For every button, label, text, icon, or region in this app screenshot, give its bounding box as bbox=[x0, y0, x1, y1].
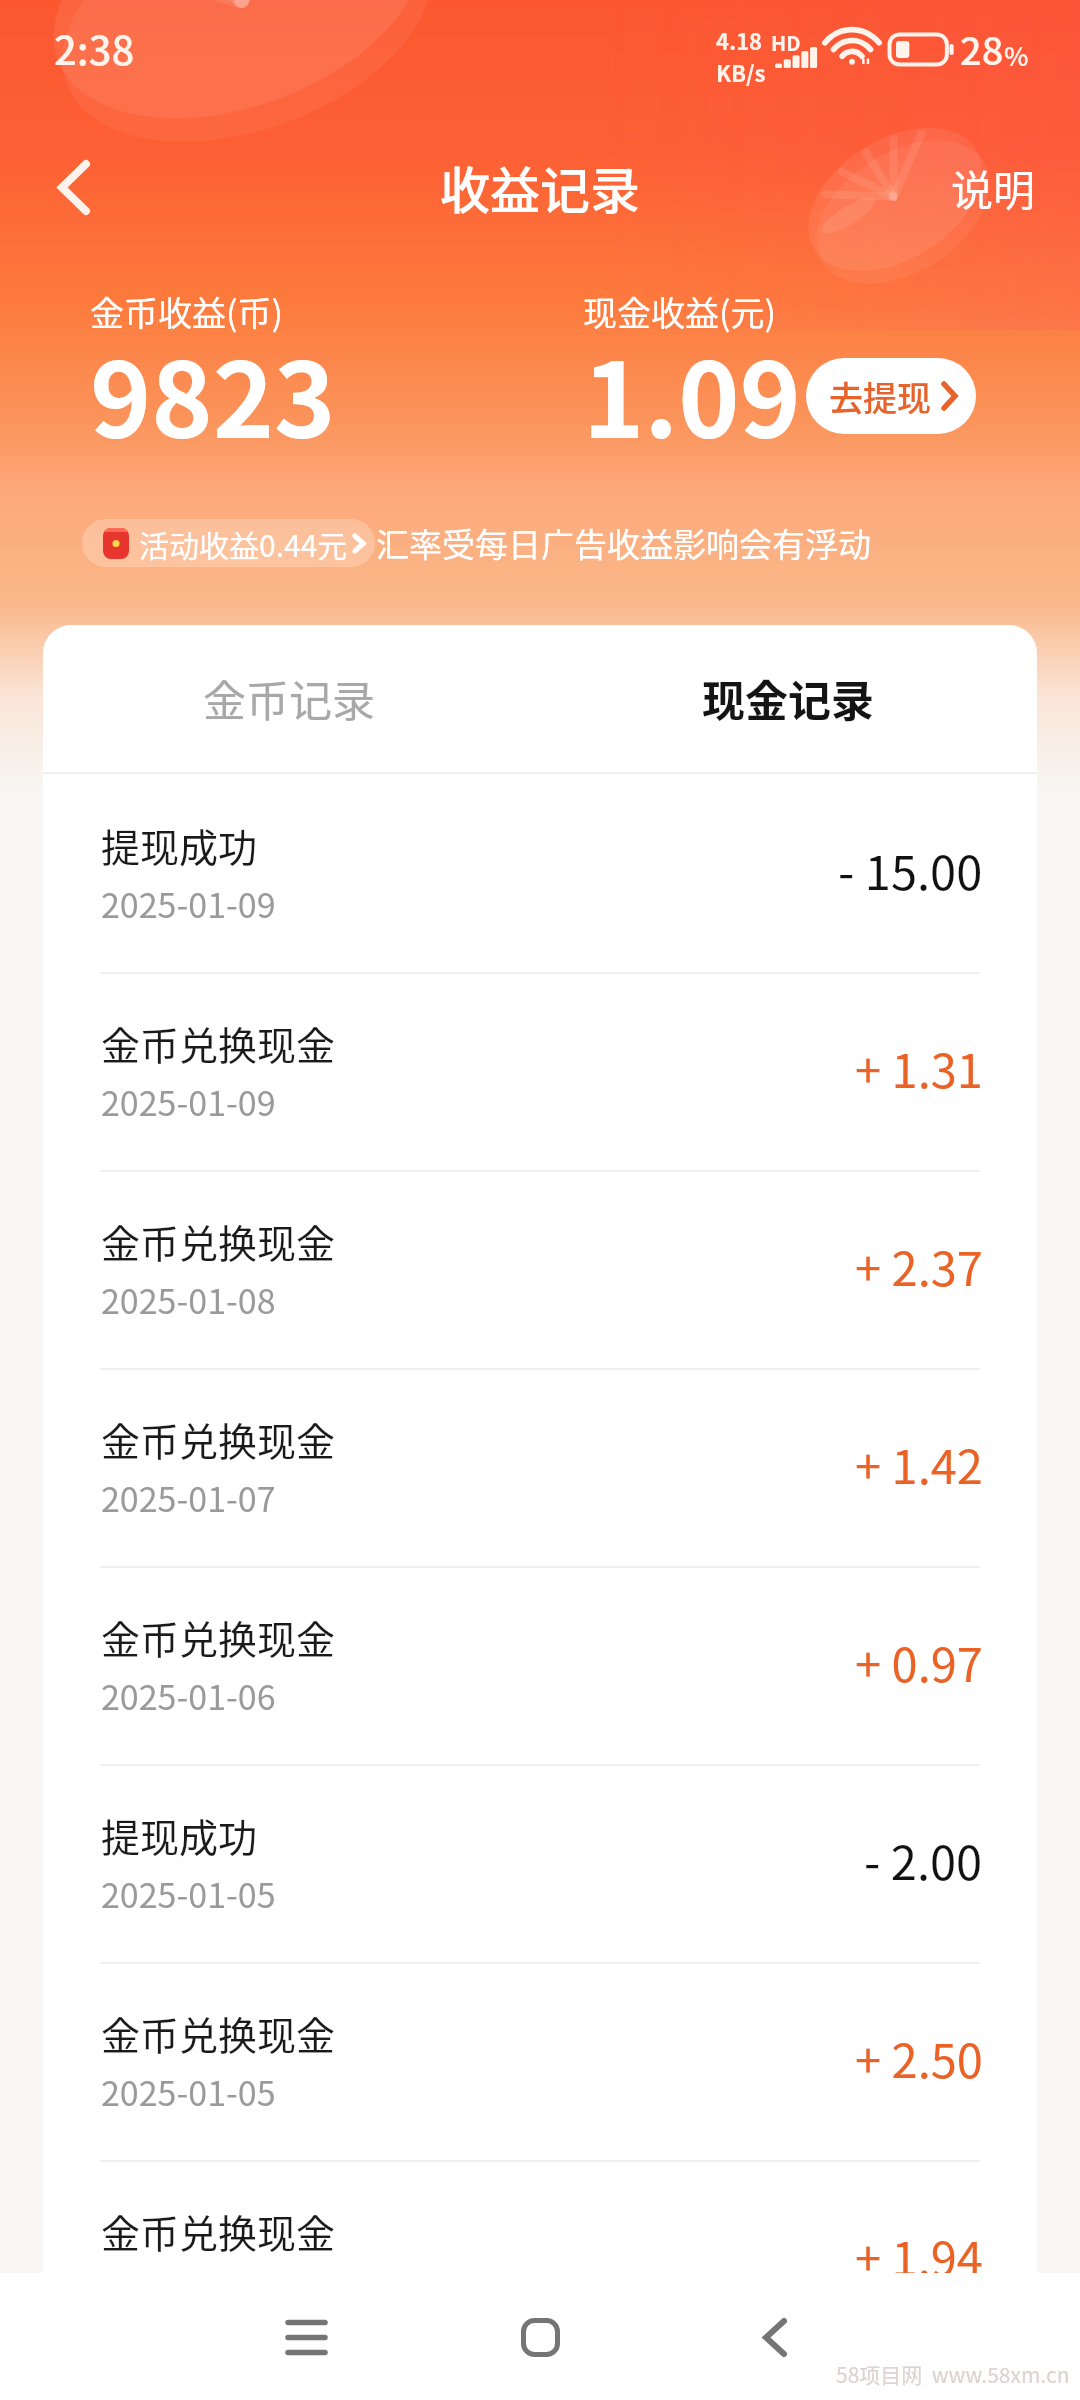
staticText: + 1.31 bbox=[855, 1033, 983, 1101]
button[interactable]: 返回 bbox=[0, 100, 148, 274]
button[interactable]: 金币兑换现金 bbox=[43, 1170, 1037, 1368]
staticText: KB/s bbox=[716, 56, 766, 88]
staticText: 2:38 bbox=[54, 19, 135, 77]
button[interactable]: 返回 bbox=[715, 2277, 835, 2397]
button[interactable]: 说明 bbox=[951, 100, 1036, 274]
staticText: 金币兑换现金 bbox=[101, 1213, 336, 1269]
staticText: - 15.00 bbox=[838, 835, 983, 903]
button[interactable]: 主屏幕 bbox=[480, 2277, 600, 2397]
button[interactable]: 最近任务 bbox=[246, 2277, 366, 2397]
staticText: 金币兑换现金 bbox=[101, 1609, 336, 1665]
staticText: 提现成功 bbox=[101, 1807, 258, 1863]
staticText: 金币记录 bbox=[203, 667, 375, 729]
button[interactable]: 金币兑换现金 bbox=[43, 972, 1037, 1170]
staticText: 2025-01-09 bbox=[101, 879, 276, 928]
staticText: 收益记录 bbox=[440, 151, 640, 223]
button[interactable]: 活动收益0.44元 bbox=[82, 519, 375, 567]
button[interactable]: 提现成功 bbox=[43, 1764, 1037, 1962]
staticText: 汇率受每日广告收益影响会有浮动 bbox=[376, 519, 871, 567]
staticText: 现金收益(元) bbox=[583, 287, 776, 336]
button[interactable]: 去提现 bbox=[806, 358, 976, 434]
staticText: HD bbox=[771, 28, 801, 57]
button[interactable]: 提现成功 bbox=[43, 774, 1037, 972]
button[interactable]: 金币兑换现金 bbox=[43, 1962, 1037, 2160]
button[interactable]: 金币兑换现金 bbox=[43, 2160, 1037, 2358]
staticText: 58项目网 www.58xm.cn bbox=[836, 2359, 1070, 2389]
staticText: 2025-01-07 bbox=[101, 1473, 276, 1522]
staticText: 金币兑换现金 bbox=[101, 2005, 336, 2061]
staticText: % bbox=[1004, 36, 1029, 74]
staticText: 9823 bbox=[90, 317, 336, 468]
button[interactable]: 金币兑换现金 bbox=[43, 1566, 1037, 1764]
staticText: + 2.37 bbox=[855, 1231, 983, 1299]
staticText: 4.18 bbox=[716, 24, 763, 56]
staticText: 活动收益0.44元 bbox=[139, 522, 348, 565]
button[interactable]: 金币兑换现金 bbox=[43, 1368, 1037, 1566]
staticText: 金币收益(币) bbox=[90, 287, 283, 336]
button[interactable]: 现金记录 bbox=[540, 625, 1037, 772]
staticText: 说明 bbox=[951, 157, 1036, 218]
staticText: 去提现 bbox=[829, 372, 931, 421]
staticText: + 0.97 bbox=[855, 1627, 983, 1695]
staticText: 现金记录 bbox=[702, 667, 874, 729]
staticText: 1.09 bbox=[583, 317, 801, 468]
staticText: - 2.00 bbox=[864, 1825, 983, 1893]
staticText: 金币兑换现金 bbox=[101, 2203, 336, 2259]
staticText: + 2.50 bbox=[855, 2023, 983, 2091]
staticText: 金币兑换现金 bbox=[101, 1015, 336, 1071]
staticText: 2025-01-05 bbox=[101, 2067, 276, 2116]
staticText: + 1.42 bbox=[855, 1429, 983, 1497]
staticText: 金币兑换现金 bbox=[101, 1411, 336, 1467]
staticText: 28 bbox=[960, 21, 1004, 76]
button[interactable]: 金币记录 bbox=[43, 625, 540, 772]
staticText: + 1.94 bbox=[855, 2221, 983, 2289]
staticText: 提现成功 bbox=[101, 817, 258, 873]
staticText: 2025-01-08 bbox=[101, 1275, 276, 1324]
staticText: 2025-01-05 bbox=[101, 1869, 276, 1918]
staticText: 2025-01-09 bbox=[101, 1077, 276, 1126]
staticText: 2025-01-06 bbox=[101, 1671, 276, 1720]
